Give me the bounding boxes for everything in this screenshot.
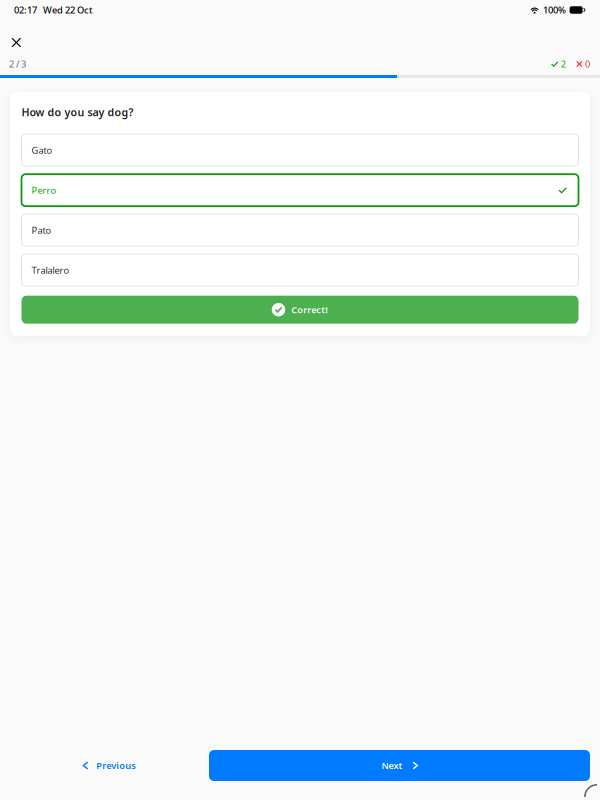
staticText: 02:17 <box>14 4 37 16</box>
button[interactable]: Gato <box>21 134 578 166</box>
staticText: Previous <box>96 759 136 772</box>
staticText: Next <box>381 759 402 772</box>
staticText: Pato <box>31 224 51 236</box>
button[interactable]: Close <box>0 24 31 50</box>
staticText: Wed 22 Oct <box>43 4 93 16</box>
staticText: Tralalero <box>31 264 69 276</box>
staticText: How do you say dog? <box>21 105 133 119</box>
button[interactable]: Pato <box>21 214 578 246</box>
staticText: 2 / 3 <box>9 58 26 70</box>
button[interactable]: Tralalero <box>21 254 578 286</box>
staticText: 100% <box>543 4 566 16</box>
button[interactable]: Previous <box>73 751 146 779</box>
button[interactable]: Perro <box>21 174 578 206</box>
staticText: Correct! <box>291 303 328 316</box>
staticText: 0 <box>585 58 590 70</box>
staticText: Perro <box>31 184 56 196</box>
staticText: Gato <box>31 144 52 156</box>
staticText: 2 <box>561 58 566 70</box>
button[interactable]: Next <box>209 750 590 781</box>
